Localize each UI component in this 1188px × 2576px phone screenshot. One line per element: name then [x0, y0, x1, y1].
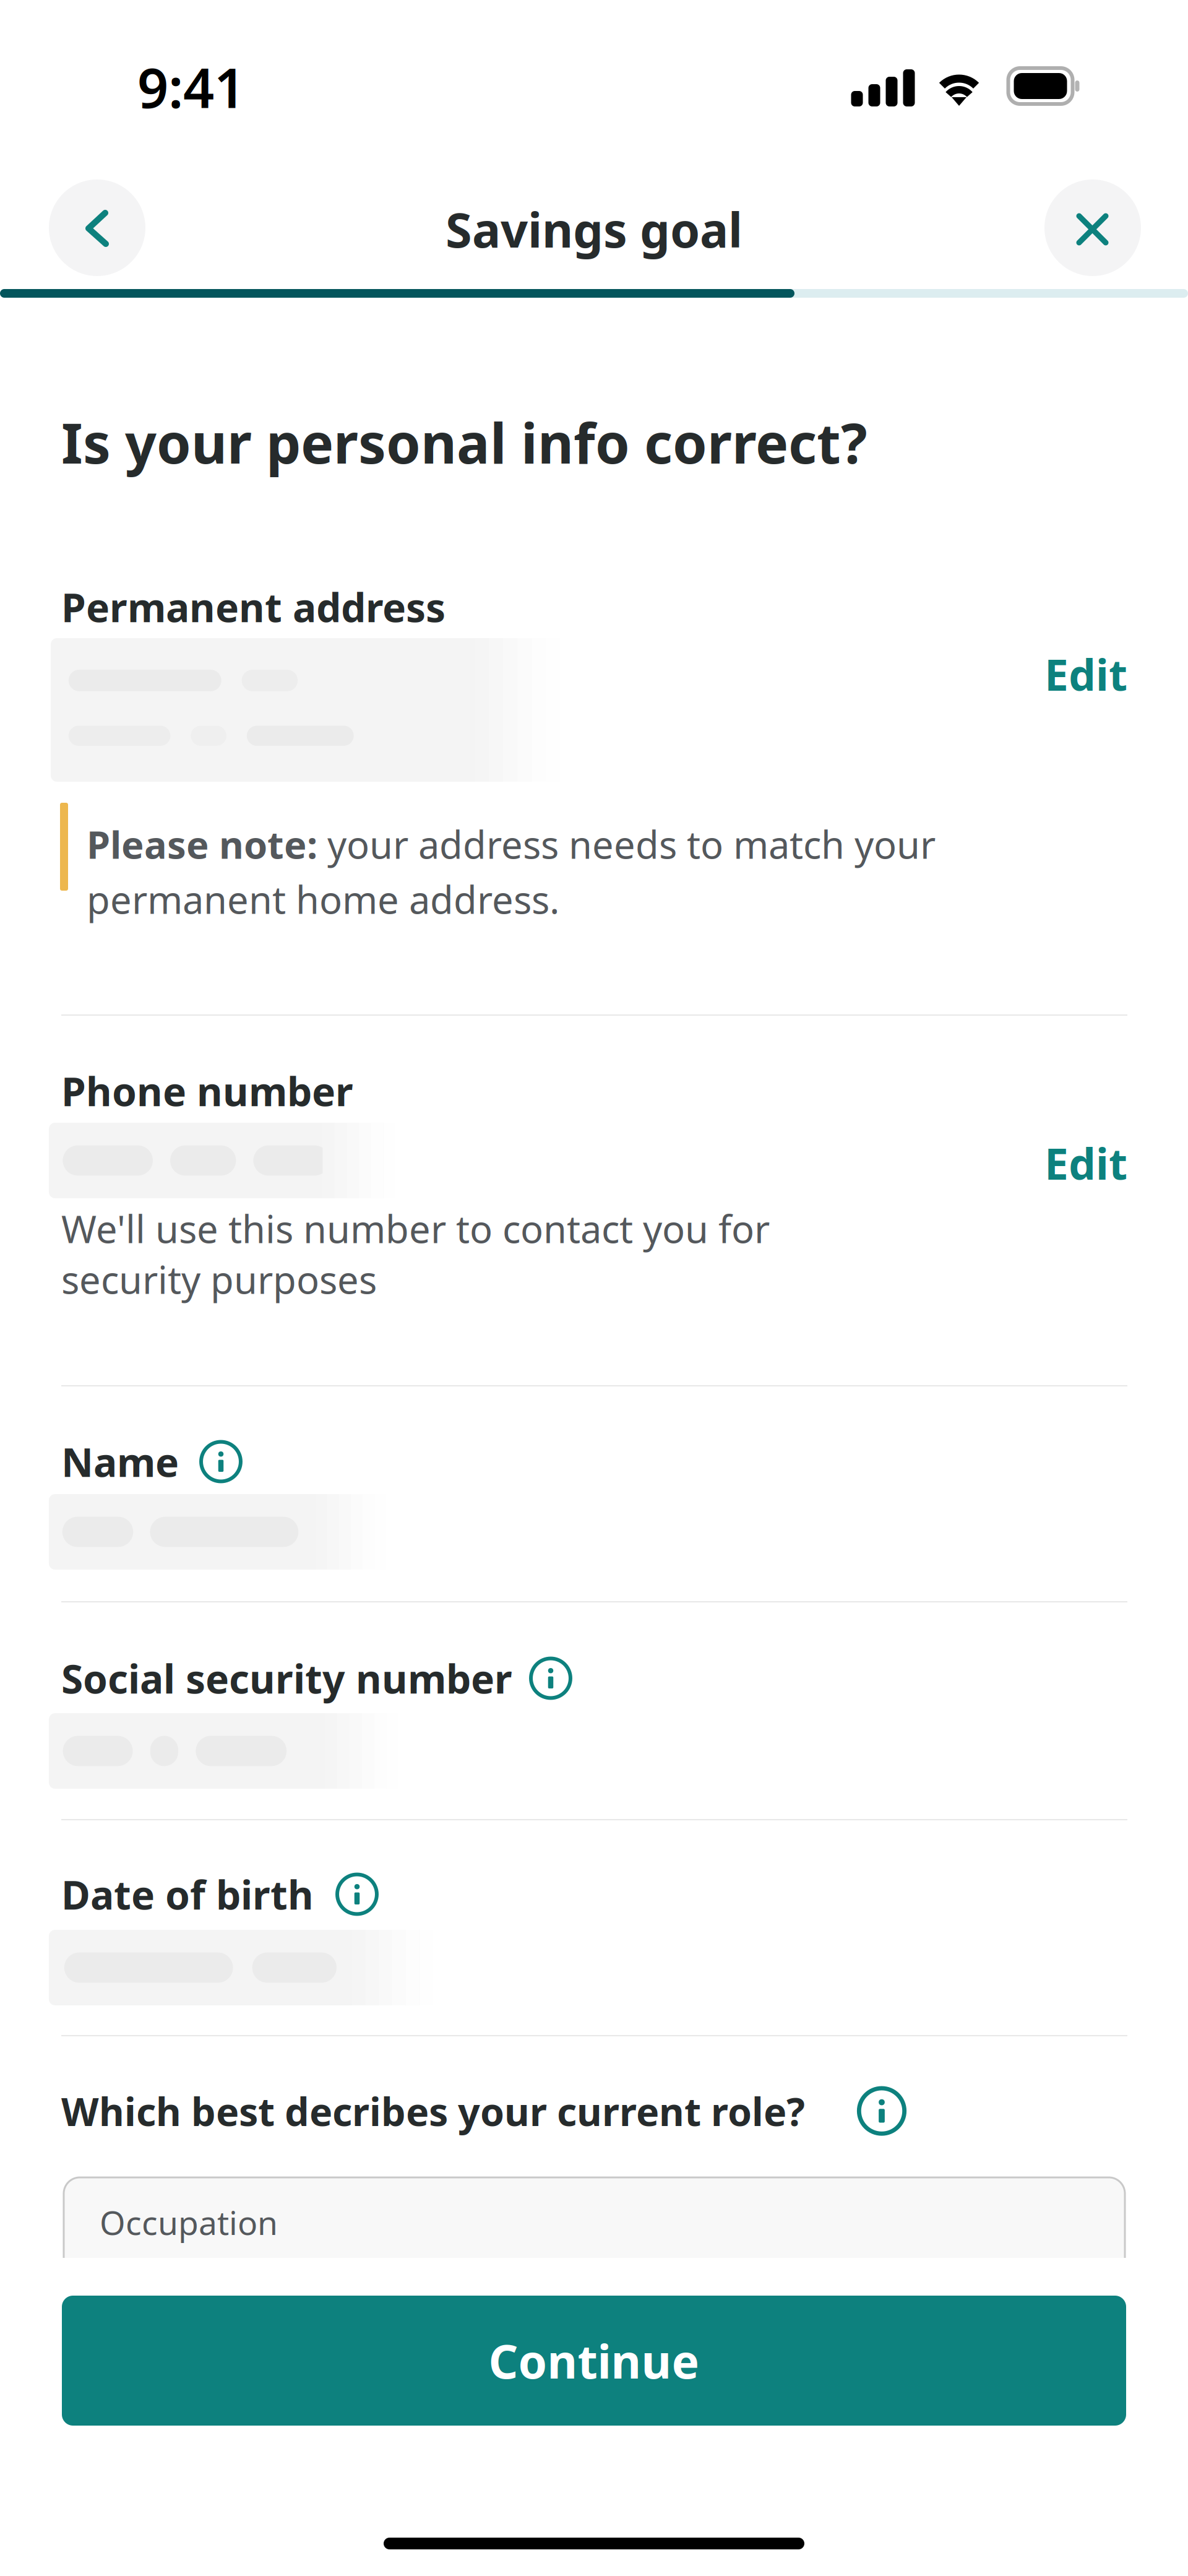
staticText: 9:41 — [137, 51, 245, 123]
staticText: Date of birth — [61, 1868, 314, 1921]
button[interactable]: Close — [1044, 179, 1141, 276]
staticText: We'll use this number to contact you for — [61, 1203, 770, 1254]
staticText: Is your personal info correct? — [61, 405, 867, 479]
staticText: Name — [61, 1435, 179, 1488]
staticText: Social security number — [61, 1652, 512, 1705]
staticText: Edit — [1044, 646, 1127, 703]
staticText: Savings goal — [445, 197, 742, 261]
staticText: Permanent address — [61, 581, 445, 633]
button[interactable]: Edit — [1010, 644, 1127, 704]
button[interactable]: Edit — [1010, 1133, 1127, 1193]
staticText: Continue — [489, 2330, 699, 2391]
staticText: permanent home address. — [87, 874, 559, 924]
staticText: Occupation — [100, 2200, 278, 2244]
button[interactable]: Back — [49, 179, 145, 276]
staticText: Which best decribes your current role? — [61, 2085, 805, 2137]
staticText: Please note: — [87, 819, 317, 869]
staticText: your address needs to match your — [327, 819, 936, 869]
staticText: Phone number — [61, 1065, 353, 1117]
button[interactable]: Continue — [62, 2296, 1126, 2426]
staticText: Edit — [1044, 1135, 1127, 1192]
staticText: security purposes — [61, 1254, 377, 1304]
